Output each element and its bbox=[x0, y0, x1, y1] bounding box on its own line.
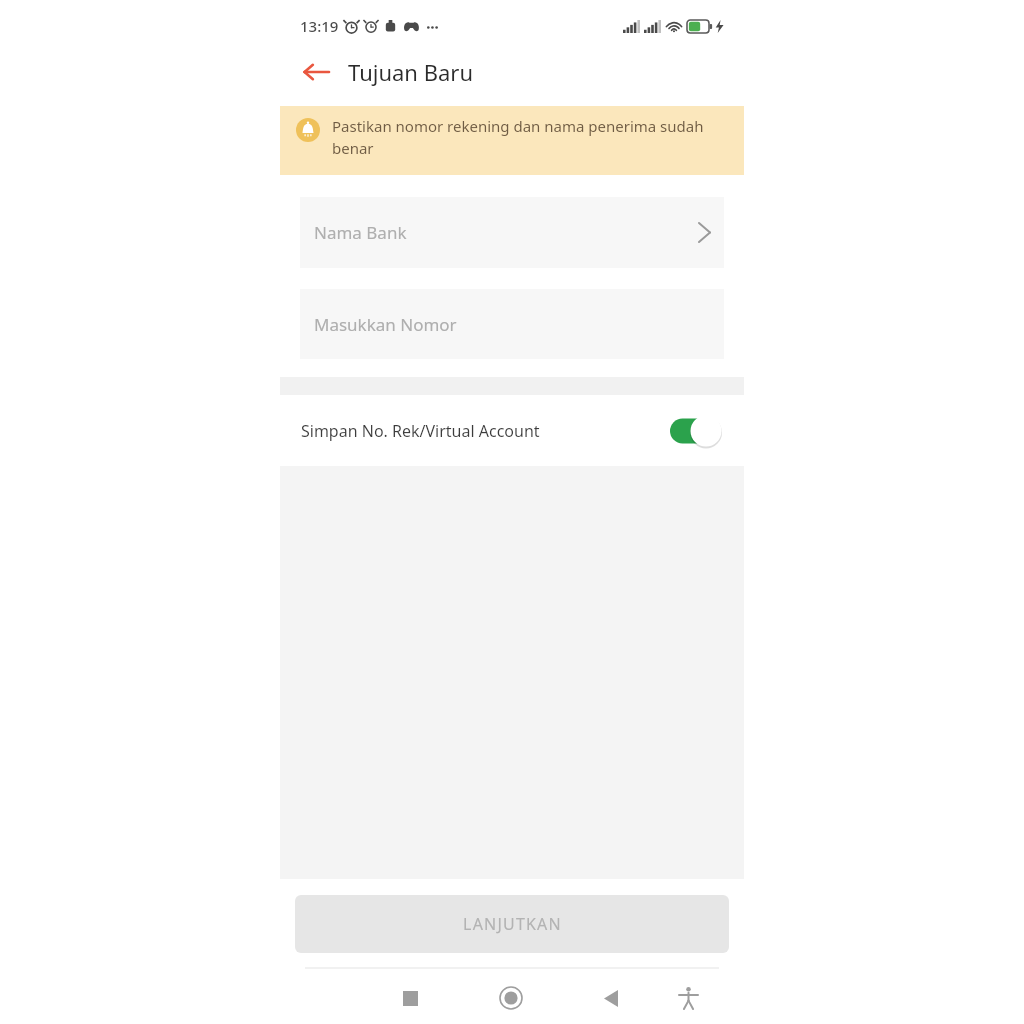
staticText: Nama Bank bbox=[314, 221, 407, 244]
button[interactable]: LANJUTKAN bbox=[295, 895, 729, 953]
staticText: Simpan No. Rek/Virtual Account bbox=[301, 420, 540, 442]
button[interactable]: Recents bbox=[388, 976, 432, 1020]
button[interactable]: Accessibility bbox=[666, 976, 710, 1020]
staticText: LANJUTKAN bbox=[463, 913, 562, 935]
staticText: Pastikan nomor rekening dan nama penerim… bbox=[332, 116, 730, 159]
button[interactable]: Home bbox=[489, 976, 533, 1020]
staticText: 13:19 bbox=[300, 16, 339, 36]
button[interactable]: Simpan No. Rek/Virtual Account bbox=[280, 398, 744, 464]
button[interactable]: Back bbox=[294, 50, 338, 94]
button[interactable]: Nama Bank bbox=[300, 197, 724, 268]
button[interactable]: Back bbox=[589, 976, 633, 1020]
button[interactable]: Masukkan Nomor bbox=[300, 289, 724, 359]
staticText: Tujuan Baru bbox=[348, 57, 473, 87]
staticText: Masukkan Nomor bbox=[314, 313, 457, 336]
